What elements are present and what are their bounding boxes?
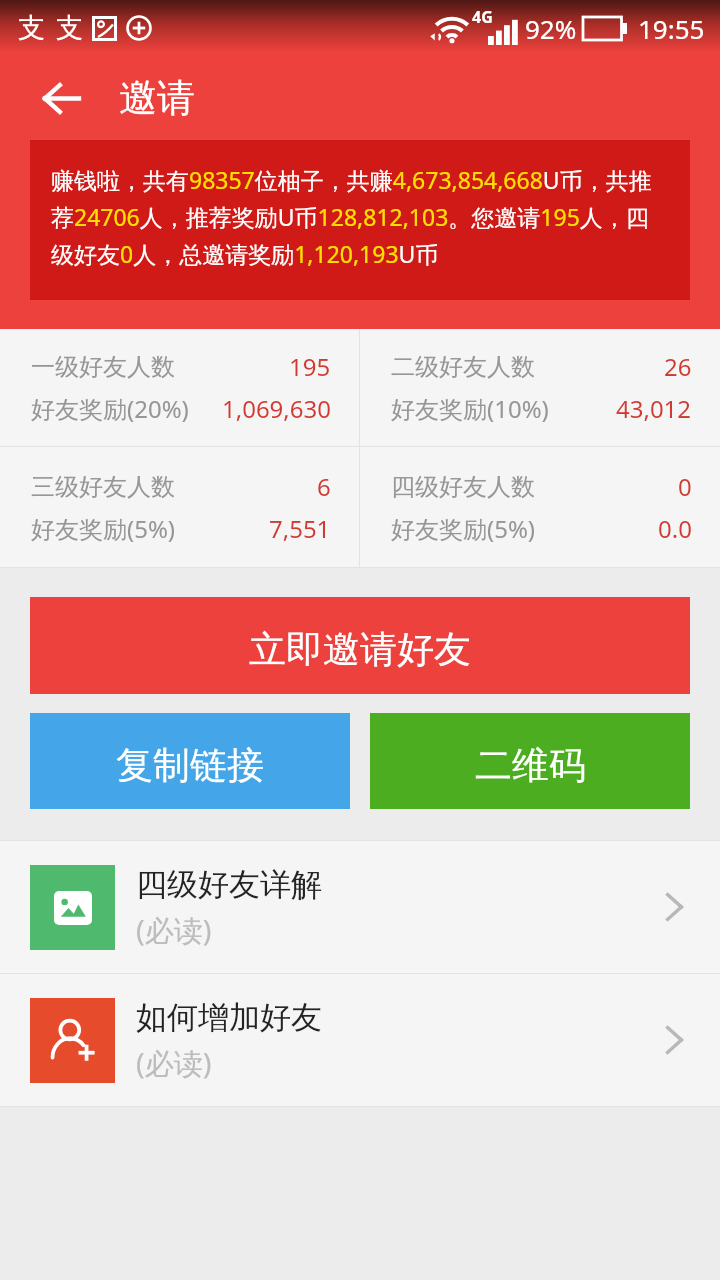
staticText: 二级好友人数 (391, 352, 535, 382)
staticText: 0.0 (658, 512, 692, 545)
staticText: 7,551 (269, 512, 331, 545)
staticText: 好友奖励(10%) (391, 392, 549, 425)
staticText: 好友奖励(5%) (31, 512, 176, 545)
button[interactable]: 二级好友人数 (360, 329, 720, 446)
button[interactable]: 立即邀请好友 (30, 597, 690, 694)
staticText: 1,069,630 (222, 392, 331, 425)
staticText: 二维码 (475, 742, 586, 789)
staticText: 立即邀请好友 (249, 626, 471, 673)
staticText: 195 (289, 350, 331, 383)
staticText: 四级好友人数 (391, 472, 535, 502)
staticText: 四级好友详解 (136, 865, 322, 904)
staticText: 92% (525, 11, 577, 46)
staticText: 三级好友人数 (31, 472, 175, 502)
button[interactable]: Back (31, 67, 93, 129)
staticText: (必读) (136, 1043, 212, 1083)
staticText: 如何增加好友 (136, 998, 322, 1037)
staticText: 4G (472, 6, 493, 28)
button[interactable]: 二维码 (370, 713, 690, 809)
staticText: 6 (317, 470, 331, 503)
staticText: 43,012 (616, 392, 692, 425)
button[interactable]: 三级好友人数 (0, 447, 359, 567)
staticText: 邀请 (119, 74, 195, 122)
staticText: 支 (56, 11, 83, 45)
staticText: 好友奖励(5%) (391, 512, 536, 545)
staticText: (必读) (136, 910, 212, 950)
staticText: 好友奖励(20%) (31, 392, 189, 425)
button[interactable]: 四级好友人数 (360, 447, 720, 567)
staticText: 0 (678, 470, 692, 503)
button[interactable]: 如何增加好友 (0, 974, 720, 1106)
button[interactable]: 四级好友详解 (0, 841, 720, 973)
staticText: 赚钱啦，共有98357位柚子，共赚4,673,854,668U币，共推荐2470… (51, 164, 663, 270)
button[interactable]: 复制链接 (30, 713, 350, 809)
staticText: 19:55 (638, 11, 705, 46)
staticText: 复制链接 (116, 742, 264, 789)
staticText: 26 (664, 350, 692, 383)
staticText: 一级好友人数 (31, 352, 175, 382)
staticText: 支 (18, 11, 45, 45)
button[interactable]: 一级好友人数 (0, 329, 359, 446)
